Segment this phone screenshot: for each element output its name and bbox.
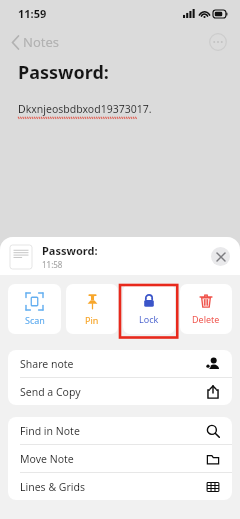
button[interactable]: Close (211, 247, 230, 266)
staticText: Lines & Grids (20, 480, 85, 494)
staticText: Delete (192, 313, 220, 325)
other: Send a Copy (206, 385, 220, 399)
staticText: Lock (139, 313, 159, 325)
other: Move Note (206, 452, 220, 466)
staticText: Password: (18, 60, 109, 85)
staticText: 11:58 (42, 259, 63, 270)
staticText: 11:59 (18, 6, 47, 21)
other: Lines and Grids (206, 480, 220, 494)
staticText: Move Note (20, 452, 74, 466)
other: Find in Note (206, 424, 220, 438)
button[interactable]: Notes (8, 29, 63, 55)
staticText: Send a Copy (20, 385, 81, 399)
staticText: Notes (23, 33, 59, 51)
staticText: Dkxnjeosbdbxod19373017. (18, 102, 152, 116)
staticText: Password: (42, 243, 98, 258)
button[interactable]: Find in Note (8, 417, 232, 444)
button[interactable]: More options (208, 32, 228, 52)
other: Share note (205, 356, 220, 371)
button[interactable]: Scan (8, 284, 61, 334)
button[interactable]: Delete (180, 284, 232, 334)
staticText: Pin (85, 314, 99, 326)
staticText: Share note (20, 357, 74, 371)
staticText: Scan (25, 314, 45, 326)
button[interactable]: Share note (8, 350, 232, 377)
button[interactable]: Lock (123, 284, 175, 334)
button[interactable]: Move Note (8, 445, 232, 472)
staticText: Find in Note (20, 424, 80, 438)
button[interactable]: Lines & Grids (8, 473, 232, 500)
button[interactable]: Pin (66, 284, 118, 334)
button[interactable]: Send a Copy (8, 378, 232, 405)
